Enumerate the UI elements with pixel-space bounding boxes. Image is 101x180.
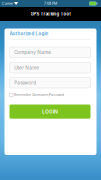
staticText: Password xyxy=(14,80,36,85)
button[interactable]: Remember Username/Password xyxy=(9,92,90,97)
staticText: LOGIN xyxy=(42,108,58,115)
button[interactable]: LOGIN xyxy=(9,104,90,119)
staticText: GPS Tracking Tool xyxy=(30,11,70,17)
staticText: User Name xyxy=(14,65,39,70)
staticText: Remember Username/Password xyxy=(14,93,64,97)
staticText: Authorized Login xyxy=(9,31,48,36)
staticText: Company Name xyxy=(14,49,51,55)
staticText: Carrier xyxy=(2,1,13,6)
staticText: 7:08 PM xyxy=(44,1,57,6)
